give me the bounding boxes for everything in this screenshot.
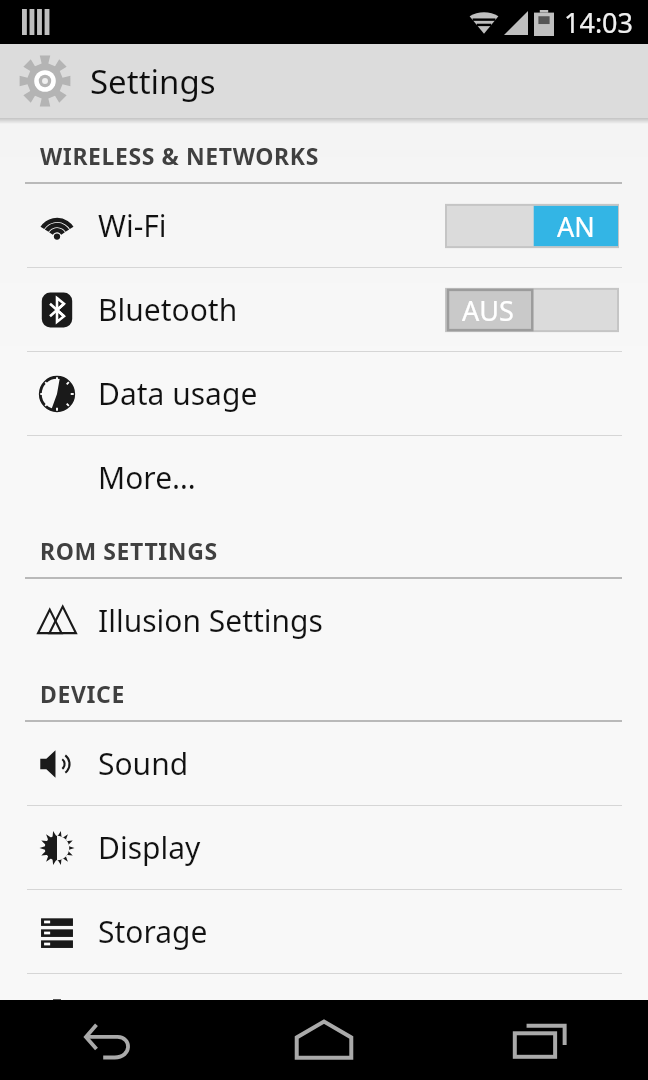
staticText: Battery: [98, 995, 201, 1036]
button[interactable]: Display: [0, 806, 648, 889]
button[interactable]: Off: [446, 286, 618, 334]
staticText: ROM SETTINGS: [40, 535, 218, 566]
staticText: More…: [98, 457, 196, 498]
button[interactable]: Data usage: [0, 352, 648, 435]
button[interactable]: Recent apps: [432, 1000, 648, 1080]
staticText: Sound: [98, 743, 189, 784]
button[interactable]: Home: [216, 1000, 432, 1080]
button[interactable]: Storage: [0, 890, 648, 973]
staticText: Display: [98, 827, 201, 868]
staticText: Storage: [98, 911, 208, 952]
staticText: Data usage: [98, 373, 258, 414]
button[interactable]: More…: [0, 436, 648, 519]
staticText: 14:03: [564, 4, 634, 41]
button[interactable]: Illusion Settings: [0, 579, 648, 662]
staticText: AN: [557, 208, 595, 245]
staticText: DEVICE: [40, 678, 125, 709]
staticText: WIRELESS & NETWORKS: [40, 140, 319, 171]
staticText: Illusion Settings: [98, 600, 323, 641]
staticText: AUS: [462, 292, 514, 329]
staticText: Bluetooth: [98, 289, 238, 330]
button[interactable]: Back: [0, 1000, 216, 1080]
staticText: Wi-Fi: [98, 205, 167, 246]
staticText: Settings: [90, 59, 216, 104]
button[interactable]: Sound: [0, 722, 648, 805]
button[interactable]: Wi-Fi: [0, 184, 648, 267]
button[interactable]: On: [446, 202, 618, 250]
button[interactable]: Bluetooth: [0, 268, 648, 351]
button[interactable]: Battery: [0, 974, 648, 1057]
